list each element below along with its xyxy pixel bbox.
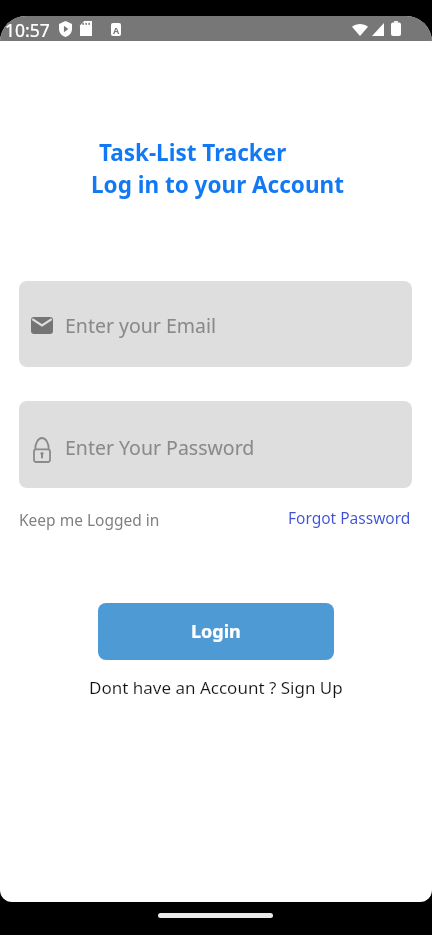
button[interactable]: Dont have an Account ? Sign Up	[0, 676, 432, 699]
staticText: Log in to your Account	[91, 169, 344, 200]
button[interactable]: Keep me Logged in	[19, 509, 160, 530]
staticText: Enter Your Password	[65, 434, 255, 461]
staticText: 10:57	[5, 18, 50, 42]
button[interactable]: Login	[98, 603, 334, 660]
staticText: Dont have an Account ? Sign Up	[89, 676, 343, 699]
staticText: Enter your Email	[65, 312, 217, 339]
button[interactable]: Forgot Password	[288, 507, 411, 528]
button[interactable]: Enter Your Password	[19, 401, 412, 488]
button[interactable]: Enter your Email	[19, 281, 412, 367]
staticText: Login	[191, 619, 241, 644]
staticText: A	[113, 24, 120, 36]
staticText: Task-List Tracker	[99, 137, 287, 168]
